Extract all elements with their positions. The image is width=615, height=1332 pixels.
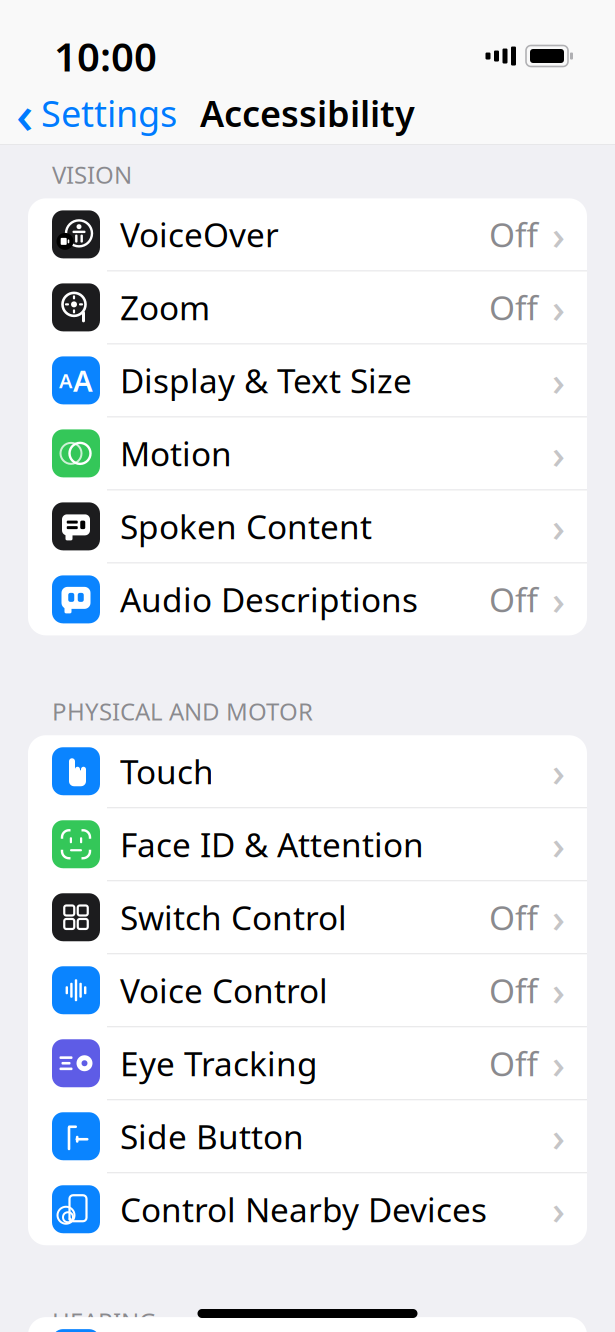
staticText: VISION xyxy=(52,158,132,190)
staticText: Accessibility xyxy=(200,89,415,137)
staticText: ‹ xyxy=(16,78,33,148)
staticText: Display & Text Size xyxy=(120,358,412,402)
staticText: › xyxy=(552,281,565,334)
staticText: Off xyxy=(489,895,538,939)
staticText: Off xyxy=(489,285,538,329)
staticText: › xyxy=(552,964,565,1017)
staticText: › xyxy=(552,1037,565,1090)
staticText: Side Button xyxy=(120,1114,304,1158)
staticText: › xyxy=(552,745,565,798)
button[interactable]: VoiceOver xyxy=(28,198,587,271)
button[interactable]: Eye Tracking xyxy=(28,1027,587,1100)
staticText: Off xyxy=(489,577,538,621)
button[interactable]: Spoken Content xyxy=(28,490,587,563)
staticText: Off xyxy=(489,1041,538,1085)
staticText: HEARING xyxy=(52,1305,156,1332)
staticText: Off xyxy=(489,968,538,1012)
staticText: Face ID & Attention xyxy=(120,822,424,866)
staticText: › xyxy=(552,500,565,553)
staticText: › xyxy=(552,818,565,871)
button[interactable]: Hearing Devices xyxy=(28,1317,587,1332)
button[interactable]: Zoom xyxy=(28,271,587,344)
staticText: › xyxy=(552,208,565,261)
staticText: › xyxy=(552,427,565,480)
staticText: Spoken Content xyxy=(120,504,372,548)
staticText: A xyxy=(59,367,72,394)
staticText: › xyxy=(552,891,565,944)
staticText: 10:00 xyxy=(54,29,157,82)
staticText: › xyxy=(552,1110,565,1163)
staticText: › xyxy=(552,354,565,407)
staticText: Zoom xyxy=(120,285,210,329)
button[interactable]: Face ID & Attention xyxy=(28,808,587,881)
button[interactable]: Voice Control xyxy=(28,954,587,1027)
staticText: A xyxy=(73,361,93,400)
staticText: Audio Descriptions xyxy=(120,577,418,621)
staticText: Voice Control xyxy=(120,968,328,1012)
staticText: VoiceOver xyxy=(120,212,279,256)
staticText: Off xyxy=(489,212,538,256)
staticText: PHYSICAL AND MOTOR xyxy=(52,695,313,727)
staticText: › xyxy=(552,1183,565,1236)
button[interactable]: Motion xyxy=(28,417,587,490)
staticText: Motion xyxy=(120,431,232,475)
staticText: › xyxy=(552,573,565,626)
button[interactable]: Audio Descriptions xyxy=(28,563,587,635)
staticText: Control Nearby Devices xyxy=(120,1187,487,1231)
button[interactable]: Switch Control xyxy=(28,881,587,954)
button[interactable]: Touch xyxy=(28,735,587,808)
button[interactable]: A xyxy=(28,344,587,417)
staticText: Touch xyxy=(120,749,214,793)
button[interactable]: Side Button xyxy=(28,1100,587,1173)
staticText: Eye Tracking xyxy=(120,1041,318,1085)
staticText: Switch Control xyxy=(120,895,347,939)
button[interactable]: Control Nearby Devices xyxy=(28,1173,587,1245)
staticText: Settings xyxy=(41,89,177,137)
button[interactable]: ‹ xyxy=(0,72,177,154)
